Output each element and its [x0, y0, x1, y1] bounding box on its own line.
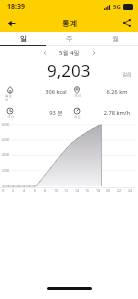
button[interactable]: Previous day [40, 48, 50, 58]
staticText: 주 [66, 34, 73, 43]
staticText: 6000 [2, 138, 10, 142]
staticText: 월 [112, 34, 119, 43]
staticText: 2.78 km/h [92, 109, 138, 117]
button[interactable]: 칼로리 [5, 86, 15, 102]
button[interactable]: 거리 [72, 86, 82, 98]
staticText: 10 [54, 188, 59, 193]
staticText: 5월 4일 [59, 49, 80, 57]
button[interactable]: Next day [89, 48, 99, 58]
staticText: 18 [96, 188, 101, 193]
staticText: 306 kcal [31, 88, 81, 96]
staticText: 6.26 km [92, 88, 138, 96]
staticText: 4000 [2, 153, 10, 157]
staticText: 16 [85, 188, 90, 193]
button[interactable]: 일 [0, 32, 46, 46]
button[interactable]: 월 [92, 32, 138, 46]
staticText: 8000 [2, 123, 10, 127]
staticText: 18:39 [7, 2, 25, 12]
staticText: 0 [2, 188, 5, 193]
staticText: 통계 [62, 19, 77, 28]
button[interactable]: 속도 [72, 107, 82, 119]
button[interactable]: 시간 [5, 107, 15, 119]
staticText: 12 [64, 188, 69, 193]
button[interactable]: Back [3, 15, 19, 31]
staticText: 2 [12, 188, 15, 193]
staticText: 93 분 [31, 109, 81, 117]
staticText: 2000 [2, 169, 10, 173]
staticText: 6 [34, 188, 37, 193]
staticText: 24 [128, 188, 133, 193]
staticText: 8 [44, 188, 47, 193]
staticText: 5G [113, 3, 121, 11]
button[interactable]: Share [119, 15, 135, 31]
staticText: 시간 [7, 115, 14, 119]
staticText: 20 [106, 188, 111, 193]
staticText: 일 [20, 34, 27, 43]
staticText: 거리 [74, 94, 81, 98]
staticText: 9,203 [47, 59, 91, 80]
staticText: 칼로리 [5, 94, 15, 102]
staticText: 속도 [74, 115, 81, 119]
staticText: 걸음 [122, 71, 132, 77]
staticText: 4 [23, 188, 26, 193]
button[interactable]: 주 [46, 32, 92, 46]
staticText: 22 [117, 188, 122, 193]
staticText: 14 [75, 188, 80, 193]
